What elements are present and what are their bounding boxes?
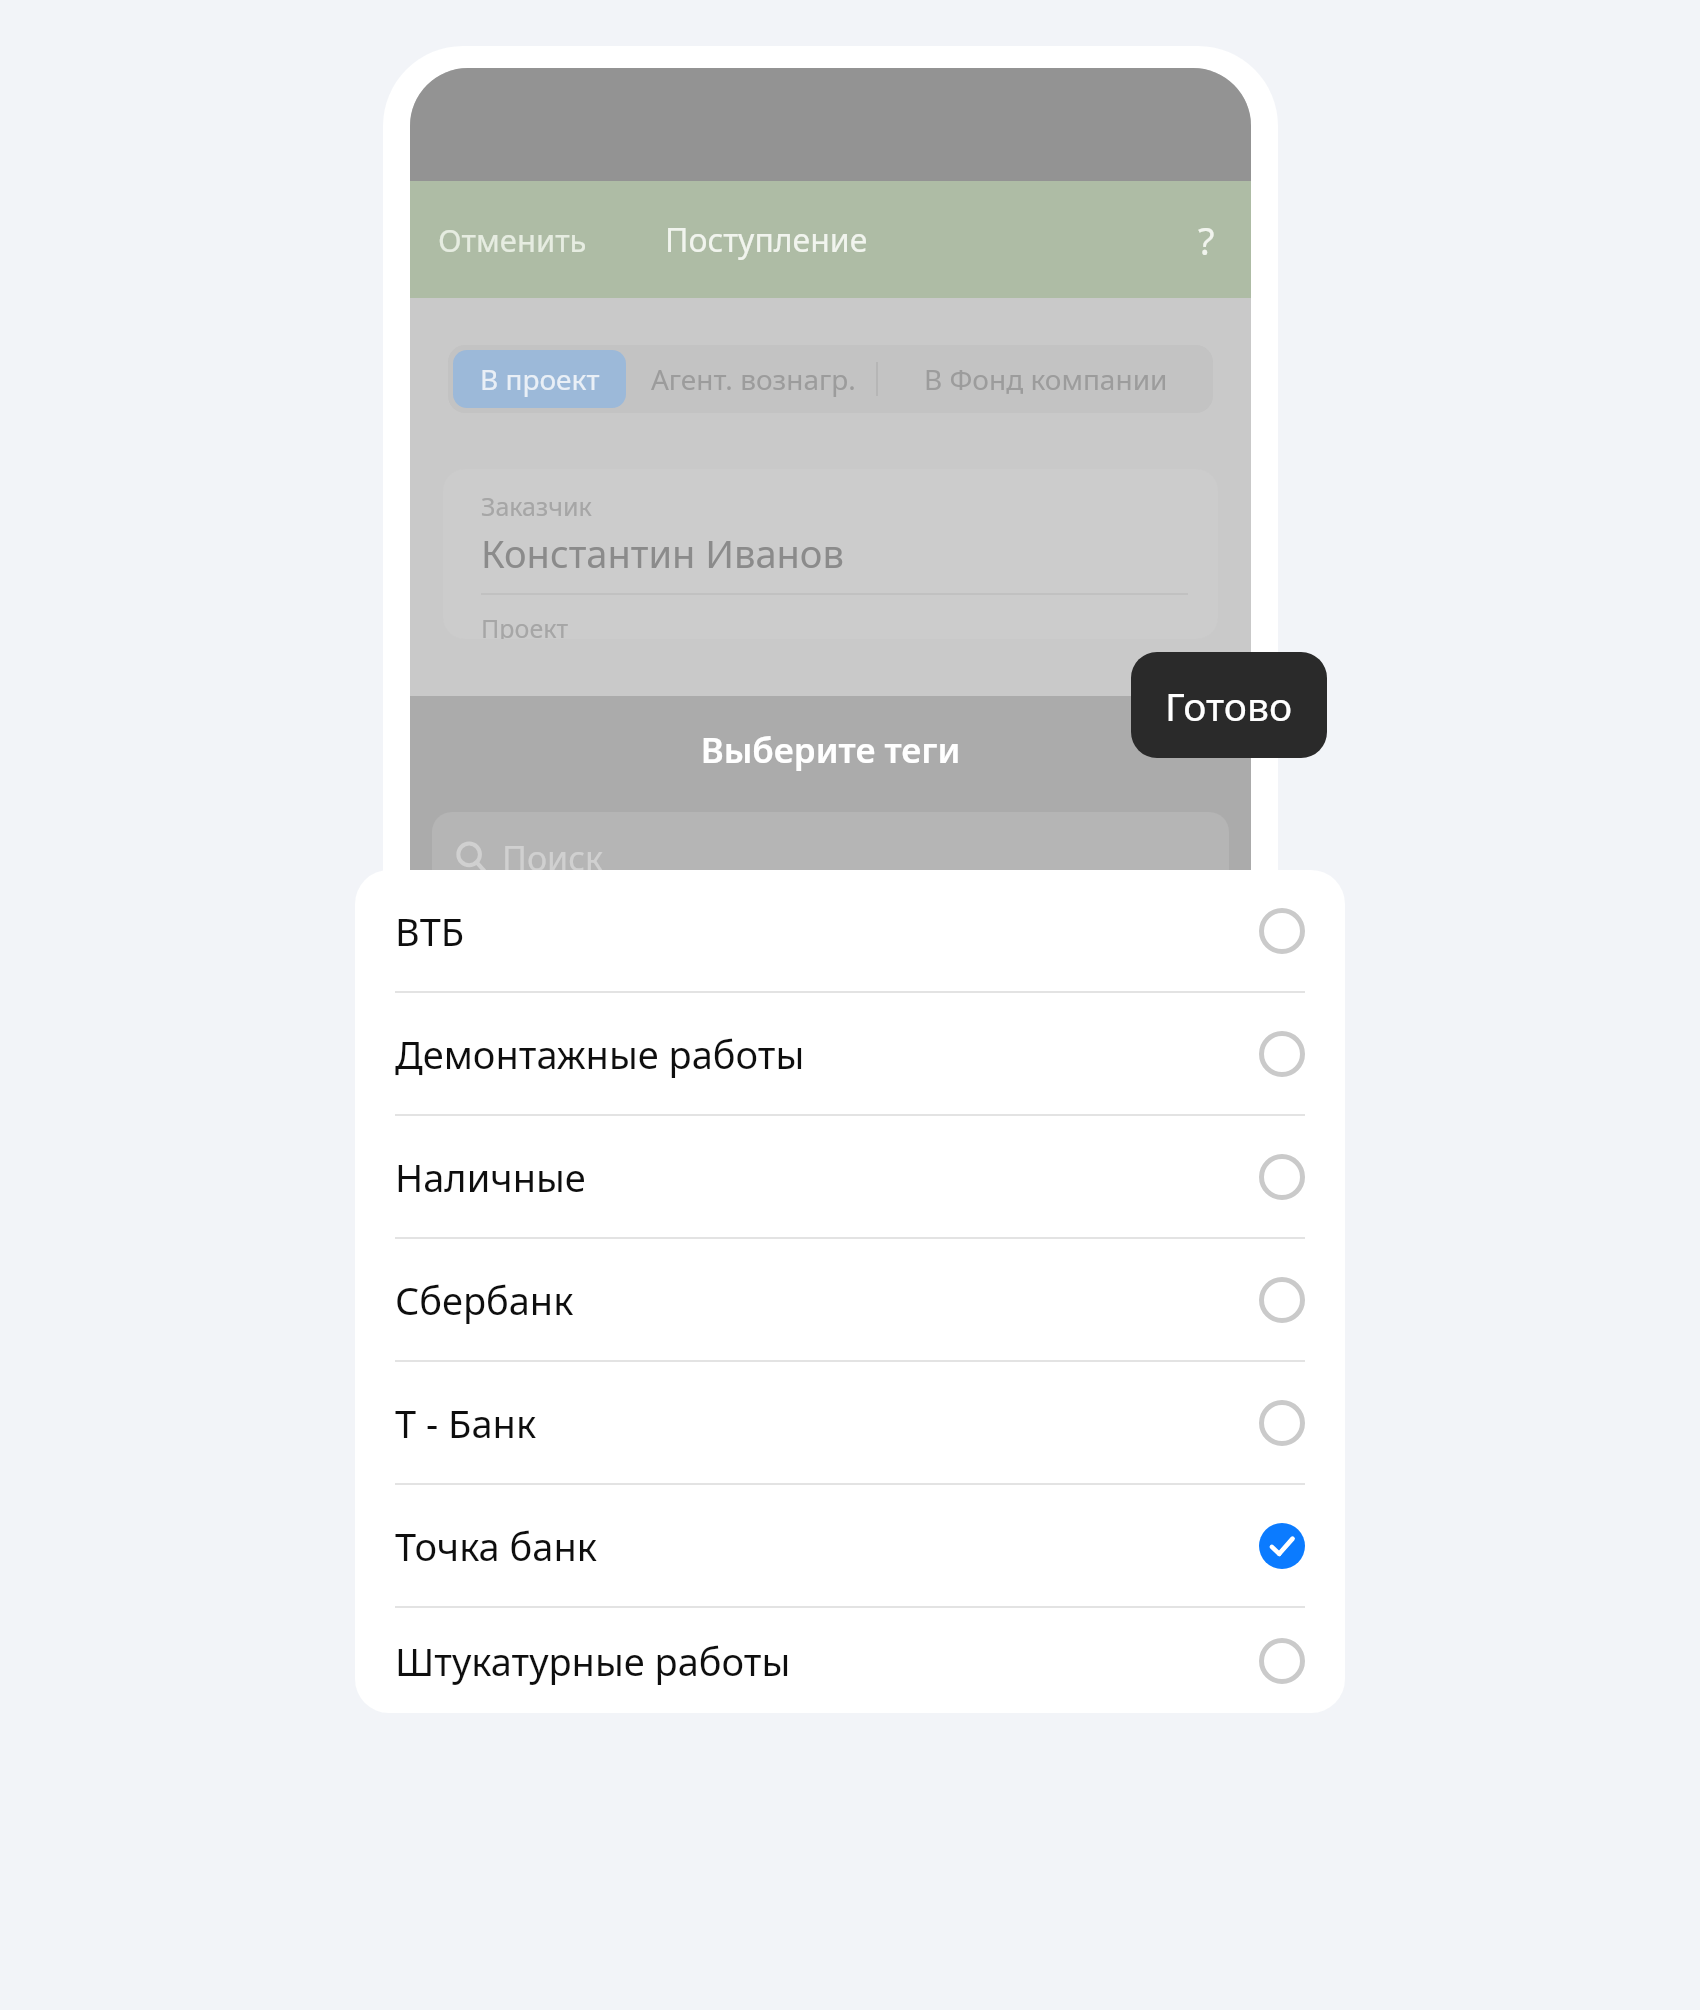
staticText: Наличные bbox=[395, 1151, 586, 1203]
button[interactable]: В Фонд компании bbox=[878, 345, 1213, 413]
button[interactable]: Наличные bbox=[355, 1116, 1345, 1237]
button[interactable]: Готово bbox=[1131, 652, 1327, 758]
button[interactable]: Агент. вознагр. bbox=[631, 345, 876, 413]
staticText: В Фонд компании bbox=[924, 360, 1168, 398]
staticText: Агент. вознагр. bbox=[651, 360, 856, 398]
button[interactable]: В проект bbox=[453, 350, 626, 408]
staticText: ? bbox=[1198, 214, 1215, 266]
staticText: Точка банк bbox=[395, 1520, 597, 1572]
staticText: Штукатурные работы bbox=[395, 1635, 791, 1687]
staticText: Выберите теги bbox=[410, 726, 1251, 774]
staticText: Отменить bbox=[438, 219, 587, 261]
button[interactable]: Добавить тег bbox=[410, 1240, 1251, 1350]
staticText: Константин Иванов bbox=[481, 527, 844, 579]
staticText: В проект bbox=[480, 360, 600, 398]
button[interactable]: Демонтажные работы bbox=[355, 993, 1345, 1114]
staticText: Поиск bbox=[502, 835, 604, 881]
staticText: Готово bbox=[1165, 679, 1293, 732]
staticText: Т - Банк bbox=[395, 1397, 537, 1449]
button[interactable]: ВТБ bbox=[355, 870, 1345, 991]
button[interactable]: Штукатурные работы bbox=[355, 1608, 1345, 1713]
staticText: Поступление bbox=[665, 218, 868, 262]
staticText: Заказчик bbox=[481, 489, 592, 523]
button[interactable]: Отменить bbox=[432, 209, 593, 271]
button[interactable]: Т - Банк bbox=[355, 1362, 1345, 1483]
button[interactable]: Сбербанк bbox=[355, 1239, 1345, 1360]
staticText: Добавить тег bbox=[508, 1272, 725, 1318]
staticText: ВТБ bbox=[395, 905, 465, 957]
staticText: Демонтажные работы bbox=[395, 1028, 805, 1080]
button[interactable]: Точка банк bbox=[355, 1485, 1345, 1606]
button[interactable]: Help bbox=[1184, 206, 1229, 274]
staticText: Сбербанк bbox=[395, 1274, 574, 1326]
staticText: Проект bbox=[481, 611, 569, 639]
